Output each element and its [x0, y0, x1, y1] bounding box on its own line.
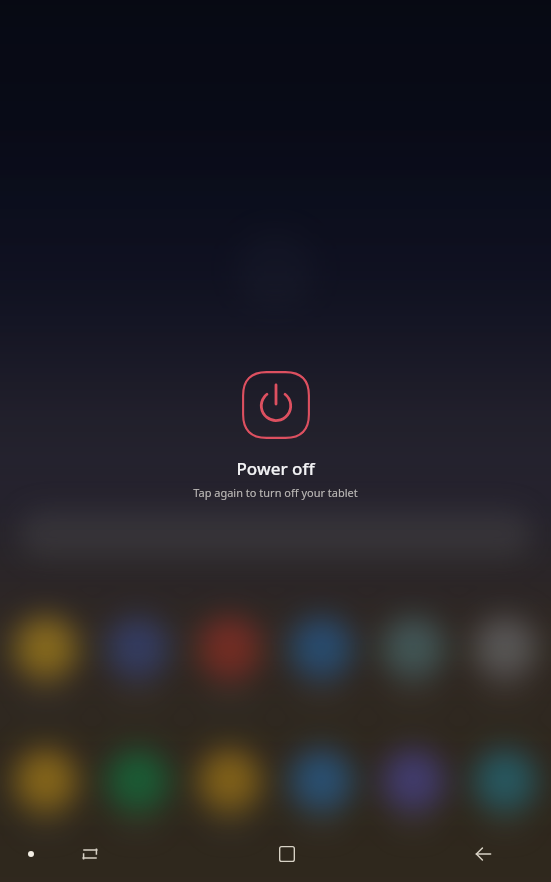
- button[interactable]: Hide navigation bar: [17, 840, 45, 868]
- button[interactable]: Power off: [241, 370, 311, 440]
- staticText: Power off: [236, 457, 315, 480]
- button[interactable]: Recents: [62, 826, 118, 882]
- staticText: Tap again to turn off your tablet: [193, 485, 358, 500]
- button[interactable]: Back: [455, 826, 511, 882]
- button[interactable]: Home: [259, 826, 315, 882]
